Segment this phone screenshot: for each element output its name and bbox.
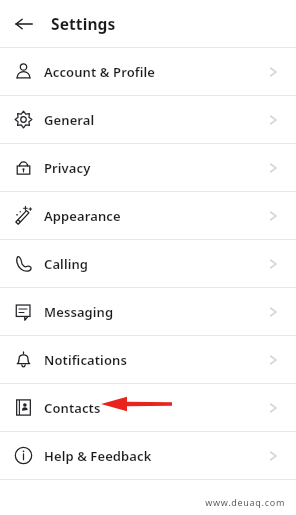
- staticText: Calling: [44, 255, 89, 273]
- staticText: Account & Profile: [44, 63, 155, 81]
- button[interactable]: Privacy: [0, 144, 296, 191]
- button[interactable]: Notifications: [0, 336, 296, 383]
- staticText: Appearance: [44, 207, 121, 225]
- staticText: Settings: [51, 13, 116, 34]
- staticText: Contacts: [44, 399, 101, 417]
- button[interactable]: Calling: [0, 240, 296, 287]
- button[interactable]: Appearance: [0, 192, 296, 239]
- staticText: Notifications: [44, 351, 127, 369]
- button[interactable]: Contacts: [0, 384, 296, 431]
- staticText: General: [44, 111, 95, 129]
- button[interactable]: General: [0, 96, 296, 143]
- button[interactable]: Help & Feedback: [0, 432, 296, 479]
- staticText: Privacy: [44, 159, 91, 177]
- staticText: www.deuaq.com: [205, 496, 285, 508]
- staticText: Help & Feedback: [44, 447, 152, 465]
- button[interactable]: Messaging: [0, 288, 296, 335]
- button[interactable]: Account & Profile: [0, 48, 296, 95]
- staticText: Messaging: [44, 303, 114, 321]
- button[interactable]: Back: [6, 6, 42, 42]
